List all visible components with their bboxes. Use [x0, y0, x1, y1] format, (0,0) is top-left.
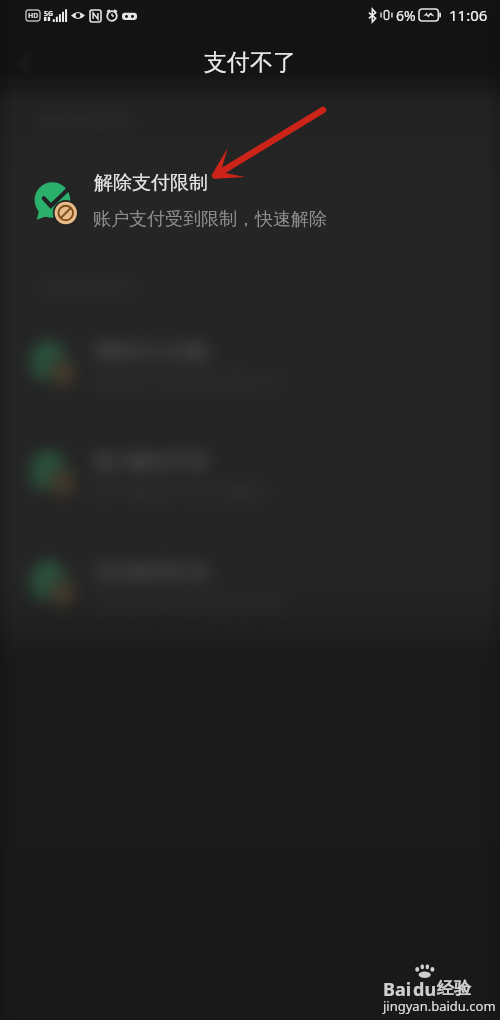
button[interactable]: 解除支付限制 [0, 160, 500, 242]
staticText: 解除支付限制 [94, 171, 208, 195]
staticText: 经验 [437, 978, 471, 999]
button[interactable]: 帮助中心问题 [0, 318, 500, 418]
staticText: 11:06 [449, 5, 488, 25]
staticText: 支付不了 [204, 48, 296, 77]
staticText: 账户支付受到限制，快速解除 [93, 208, 327, 231]
button[interactable]: 无法收到红包 [0, 538, 500, 638]
staticText: HD [28, 11, 39, 21]
staticText: 账户解封申请 [94, 450, 208, 474]
button[interactable]: 账户解封申请 [0, 428, 500, 528]
staticText: 5G [44, 9, 54, 19]
staticText: du [413, 977, 437, 1002]
staticText: Bai [383, 977, 412, 1002]
staticText: jingyan.baidu.com [383, 997, 496, 1015]
staticText: 6% [396, 6, 416, 25]
staticText: 帮助中心问题 [94, 340, 208, 364]
